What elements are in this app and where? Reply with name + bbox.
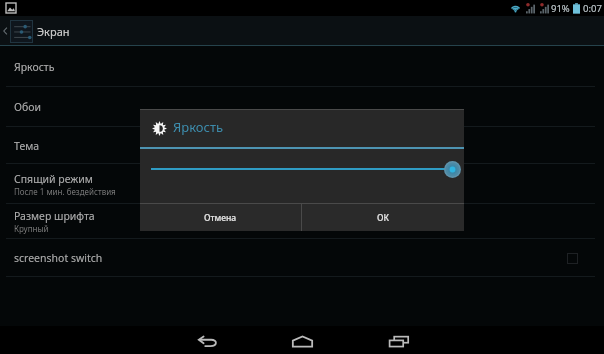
- button[interactable]: Размер шрифта: [0, 204, 604, 239]
- staticText: Отмена: [204, 212, 237, 224]
- staticText: Обои: [14, 100, 42, 114]
- button[interactable]: Яркость: [0, 46, 604, 87]
- button[interactable]: Обои: [0, 87, 604, 127]
- staticText: Тема: [14, 139, 40, 153]
- button[interactable]: Recent apps: [369, 328, 428, 354]
- button[interactable]: screenshot switch: [0, 239, 604, 277]
- button[interactable]: Спящий режим: [0, 164, 604, 204]
- staticText: Яркость: [173, 118, 224, 136]
- button[interactable]: ОК: [302, 204, 464, 231]
- staticText: Яркость: [14, 60, 55, 74]
- button[interactable]: Back: [178, 328, 237, 354]
- staticText: Спящий режим: [14, 172, 93, 186]
- staticText: screenshot switch: [14, 251, 103, 265]
- staticText: Размер шрифта: [14, 209, 95, 223]
- staticText: Крупный: [14, 223, 49, 234]
- staticText: 0:07: [583, 2, 602, 15]
- button[interactable]: Home: [273, 328, 332, 354]
- button[interactable]: Отмена: [140, 204, 301, 231]
- staticText: ОК: [377, 212, 389, 224]
- button[interactable]: Navigate up: [0, 16, 70, 46]
- button[interactable]: Brightness slider: [140, 155, 464, 183]
- staticText: 91%: [551, 2, 570, 15]
- staticText: После 1 мин. бездействия: [14, 186, 116, 197]
- staticText: Экран: [37, 24, 70, 39]
- button[interactable]: Тема: [0, 127, 604, 164]
